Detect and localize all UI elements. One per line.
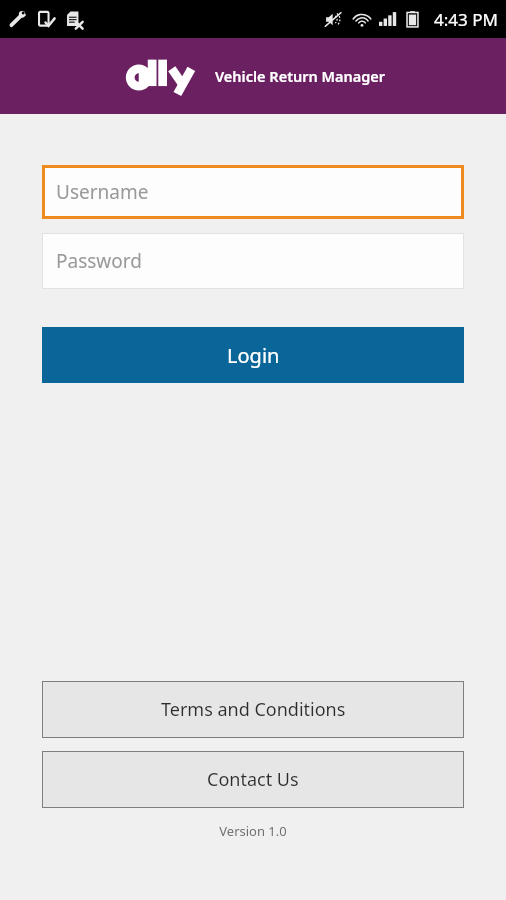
staticText: Username: [56, 179, 149, 205]
button[interactable]: Username input field: [42, 165, 464, 219]
button[interactable]: Terms and Conditions: [42, 681, 464, 738]
staticText: Password: [56, 248, 142, 274]
button[interactable]: Login: [42, 327, 464, 383]
staticText: Contact Us: [207, 767, 299, 792]
button[interactable]: Contact Us: [42, 751, 464, 808]
button[interactable]: Password input field: [42, 233, 464, 289]
staticText: Vehicle Return Manager: [215, 66, 386, 86]
staticText: Version 1.0: [0, 822, 506, 840]
staticText: 4:43 PM: [434, 8, 498, 31]
staticText: Login: [227, 342, 280, 369]
staticText: Terms and Conditions: [161, 697, 346, 722]
